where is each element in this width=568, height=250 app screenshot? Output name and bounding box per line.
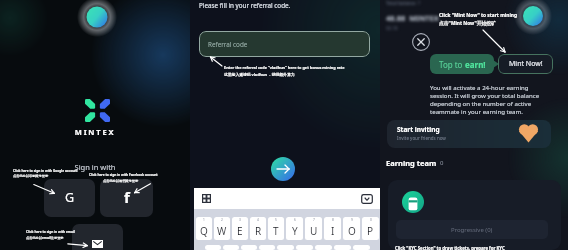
staticText: Y bbox=[292, 224, 298, 238]
staticText: 2 bbox=[221, 218, 223, 222]
button[interactable]: 7 bbox=[305, 217, 322, 240]
button[interactable]: Continue bbox=[271, 157, 295, 181]
staticText: f bbox=[124, 187, 130, 207]
staticText: Sign in with bbox=[0, 162, 190, 172]
staticText: 48.88 MINTEX bbox=[386, 13, 439, 23]
staticText: O bbox=[348, 224, 356, 238]
button[interactable]: Close bbox=[412, 33, 430, 51]
button[interactable]: Progressive (0) bbox=[396, 220, 548, 239]
staticText: 4 bbox=[257, 218, 259, 222]
staticText: 点击此处以email注册登录 bbox=[26, 236, 64, 240]
button[interactable]: 8 bbox=[324, 217, 341, 240]
staticText: 点击此处以脸书账号登录 bbox=[103, 179, 139, 183]
staticText: Referral code bbox=[208, 40, 248, 49]
staticText: Mint Now! bbox=[509, 59, 543, 69]
staticText: Progressive (0) bbox=[451, 226, 493, 234]
staticText: 1 bbox=[203, 218, 205, 222]
button[interactable]: 6 bbox=[286, 217, 303, 240]
staticText: 8 bbox=[332, 218, 334, 222]
staticText: $0.18 bbox=[386, 25, 398, 31]
staticText: 点击"Mint Now"开始挖矿 bbox=[439, 20, 496, 27]
staticText: Please fill in your referral code. bbox=[199, 1, 291, 10]
staticText: W bbox=[217, 224, 227, 238]
staticText: 7 bbox=[313, 218, 315, 222]
button[interactable]: L bbox=[353, 245, 370, 250]
staticText: earn! bbox=[465, 59, 486, 70]
staticText: T bbox=[273, 224, 279, 238]
button[interactable]: 0 bbox=[362, 217, 379, 240]
button[interactable]: K bbox=[334, 245, 351, 250]
button[interactable]: D bbox=[241, 245, 257, 250]
button[interactable]: 3 bbox=[232, 217, 248, 240]
button[interactable]: 9 bbox=[343, 217, 360, 240]
button[interactable]: Start inviting bbox=[387, 120, 551, 148]
staticText: 点击此处以谷歌账号登录 bbox=[13, 174, 49, 178]
staticText: Click "KYC Section" to draw tickets, pre… bbox=[395, 245, 505, 250]
staticText: R bbox=[255, 224, 262, 238]
button[interactable]: 2 bbox=[214, 217, 230, 240]
staticText: G bbox=[65, 189, 75, 206]
staticText: Q bbox=[200, 224, 208, 238]
staticText: session. It will grow your total balance bbox=[430, 91, 540, 99]
button[interactable]: F bbox=[259, 245, 275, 250]
button[interactable]: Top to bbox=[430, 54, 494, 74]
staticText: 9 bbox=[351, 218, 353, 222]
staticText: 5 bbox=[275, 218, 277, 222]
staticText: teammate in your earning team. bbox=[430, 107, 523, 115]
button[interactable]: G bbox=[277, 245, 294, 250]
button[interactable]: 5 bbox=[268, 217, 284, 240]
button[interactable]: Keyboard apps bbox=[202, 194, 211, 203]
staticText: E bbox=[237, 224, 243, 238]
button[interactable]: 1 bbox=[196, 217, 212, 240]
staticText: Enter the referral code "vladhun" here t… bbox=[224, 65, 345, 70]
button[interactable]: Mint Now! bbox=[498, 54, 553, 74]
button[interactable]: Sign in with Facebook bbox=[100, 179, 153, 217]
button[interactable]: Sign in with email bbox=[72, 224, 123, 250]
staticText: Click here to sign in with email bbox=[26, 230, 75, 234]
staticText: Earning team bbox=[386, 158, 437, 168]
button[interactable]: Sign in with Google bbox=[44, 179, 95, 217]
button[interactable]: 4 bbox=[250, 217, 266, 240]
staticText: Click here to sign in with Facebook acco… bbox=[89, 173, 158, 177]
staticText: Top to bbox=[439, 59, 465, 70]
staticText: U bbox=[310, 224, 318, 238]
staticText: Start inviting bbox=[397, 125, 440, 134]
staticText: P bbox=[367, 224, 374, 238]
button[interactable]: S bbox=[223, 245, 239, 250]
staticText: depending on the number of active bbox=[430, 99, 532, 107]
staticText: You will activate a 24-hour earning bbox=[430, 83, 529, 91]
button[interactable]: A bbox=[205, 245, 221, 250]
button[interactable]: Referral code bbox=[199, 31, 370, 57]
staticText: I bbox=[331, 224, 335, 238]
staticText: MINTEX bbox=[0, 127, 190, 137]
staticText: 0 bbox=[440, 159, 444, 167]
staticText: Total balance ? bbox=[386, 0, 421, 6]
staticText: Click "Mint Now" to start mining bbox=[439, 12, 517, 19]
staticText: 0 bbox=[370, 218, 372, 222]
button[interactable]: H bbox=[296, 245, 313, 250]
button[interactable]: Hide keyboard bbox=[361, 194, 373, 204]
staticText: Invite your friends now bbox=[397, 135, 446, 141]
staticText: 3 bbox=[239, 218, 241, 222]
staticText: 这里输入邀请码 vladhun ，获得额外算力 bbox=[224, 72, 295, 77]
staticText: 6 bbox=[294, 218, 296, 222]
staticText: Click here to sign in with Google accoun… bbox=[13, 169, 78, 173]
button[interactable]: J bbox=[315, 245, 332, 250]
